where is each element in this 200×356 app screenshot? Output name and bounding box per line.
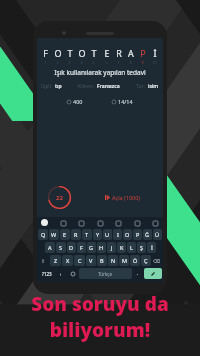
staticText: 2 [56,60,59,65]
staticText: G [89,244,94,251]
button[interactable]: O [52,47,63,59]
staticText: C [78,257,82,264]
staticText: K [120,244,124,251]
staticText: T [91,47,97,59]
button[interactable]: E [101,47,112,59]
staticText: 1 [44,60,47,65]
button[interactable]: O [123,229,132,240]
button[interactable]: Ş [137,242,146,253]
button[interactable]: More [133,219,141,227]
button[interactable]: Clipboard [96,219,104,227]
button[interactable]: J [107,242,116,253]
staticText: 5 [92,60,95,65]
button[interactable]: Shift [38,255,49,266]
button[interactable]: Q [38,229,48,240]
button[interactable]: X [62,255,73,266]
button[interactable]: Period [133,268,143,279]
staticText: P [136,231,140,238]
staticText: Ğ [145,231,150,238]
staticText: O [125,231,130,238]
button[interactable]: Ö [130,255,140,266]
staticText: Ç [144,257,148,264]
staticText: T [85,231,89,238]
button[interactable]: G [87,242,96,253]
button[interactable]: V [86,255,96,266]
button[interactable]: ?123 [38,268,55,279]
button[interactable]: C [74,255,85,266]
button[interactable]: Enter [144,268,162,279]
staticText: 9 [141,60,144,65]
staticText: J [111,244,113,251]
button[interactable]: I [113,229,122,240]
button[interactable]: T [82,229,92,240]
button[interactable]: Sticker [77,219,85,227]
staticText: ⇧ [41,258,46,264]
button[interactable]: Comma [56,268,66,279]
button[interactable]: M [119,255,129,266]
staticText: isim [148,83,159,90]
button[interactable]: İ [147,242,156,253]
button[interactable]: Microphone [151,219,159,227]
button[interactable]: L [127,242,136,253]
button[interactable]: E [60,229,70,240]
button[interactable]: Z [50,255,61,266]
staticText: Z [54,257,58,264]
button[interactable]: Ğ [143,229,152,240]
button[interactable]: A [45,242,55,253]
staticText: E [63,231,67,238]
button[interactable]: R [71,229,81,240]
button[interactable]: Emoji [67,268,78,279]
button[interactable]: P [137,47,148,59]
button[interactable]: Y [93,229,102,240]
button[interactable]: T [64,47,75,59]
staticText: O [54,47,62,59]
button[interactable]: U [103,229,112,240]
button[interactable]: H [97,242,106,253]
staticText: Ş [140,244,144,251]
button[interactable]: Kalan süre 22 [47,185,72,210]
staticText: Köken: [78,83,95,90]
button[interactable]: W [49,229,59,240]
button[interactable]: Settings [114,219,122,227]
staticText: R [116,47,122,59]
staticText: F [80,244,83,251]
button[interactable]: P [133,229,142,240]
button[interactable]: T [88,47,99,59]
staticText: tıp [55,83,62,90]
staticText: 7 [117,60,120,65]
staticText: 3 [68,60,71,65]
button[interactable]: D [67,242,76,253]
staticText: Işık kullanılarak yapılan tedavi [37,68,163,77]
staticText: Ü [155,231,160,238]
staticText: Y [96,231,100,238]
staticText: 6 [105,60,108,65]
staticText: 10 [152,60,157,65]
button[interactable]: O [76,47,87,59]
button[interactable]: İ [149,47,160,59]
button[interactable]: S [56,242,66,253]
staticText: ?123 [42,271,52,277]
button[interactable]: K [117,242,126,253]
staticText: Türkçe [98,271,113,277]
button[interactable]: GIF [59,219,67,227]
button[interactable]: Google [41,219,48,226]
button[interactable]: Ç [141,255,151,266]
staticText: İlgili: [41,83,53,90]
button[interactable]: A [125,47,136,59]
staticText: W [51,231,57,238]
button[interactable]: B [97,255,107,266]
button[interactable]: Backspace [152,255,162,266]
button[interactable]: N [108,255,118,266]
staticText: E [104,47,110,59]
button[interactable]: Ü [153,229,162,240]
staticText: 14/14 [118,98,133,105]
button[interactable]: Türkçe [79,268,132,279]
staticText: L [130,244,133,251]
button[interactable]: R [113,47,124,59]
staticText: F [43,47,48,59]
button[interactable]: F [40,47,51,59]
staticText: Tür: [136,83,146,90]
button[interactable]: Açla (1000) [102,191,143,204]
staticText: P [140,47,146,59]
button[interactable]: F [77,242,86,253]
